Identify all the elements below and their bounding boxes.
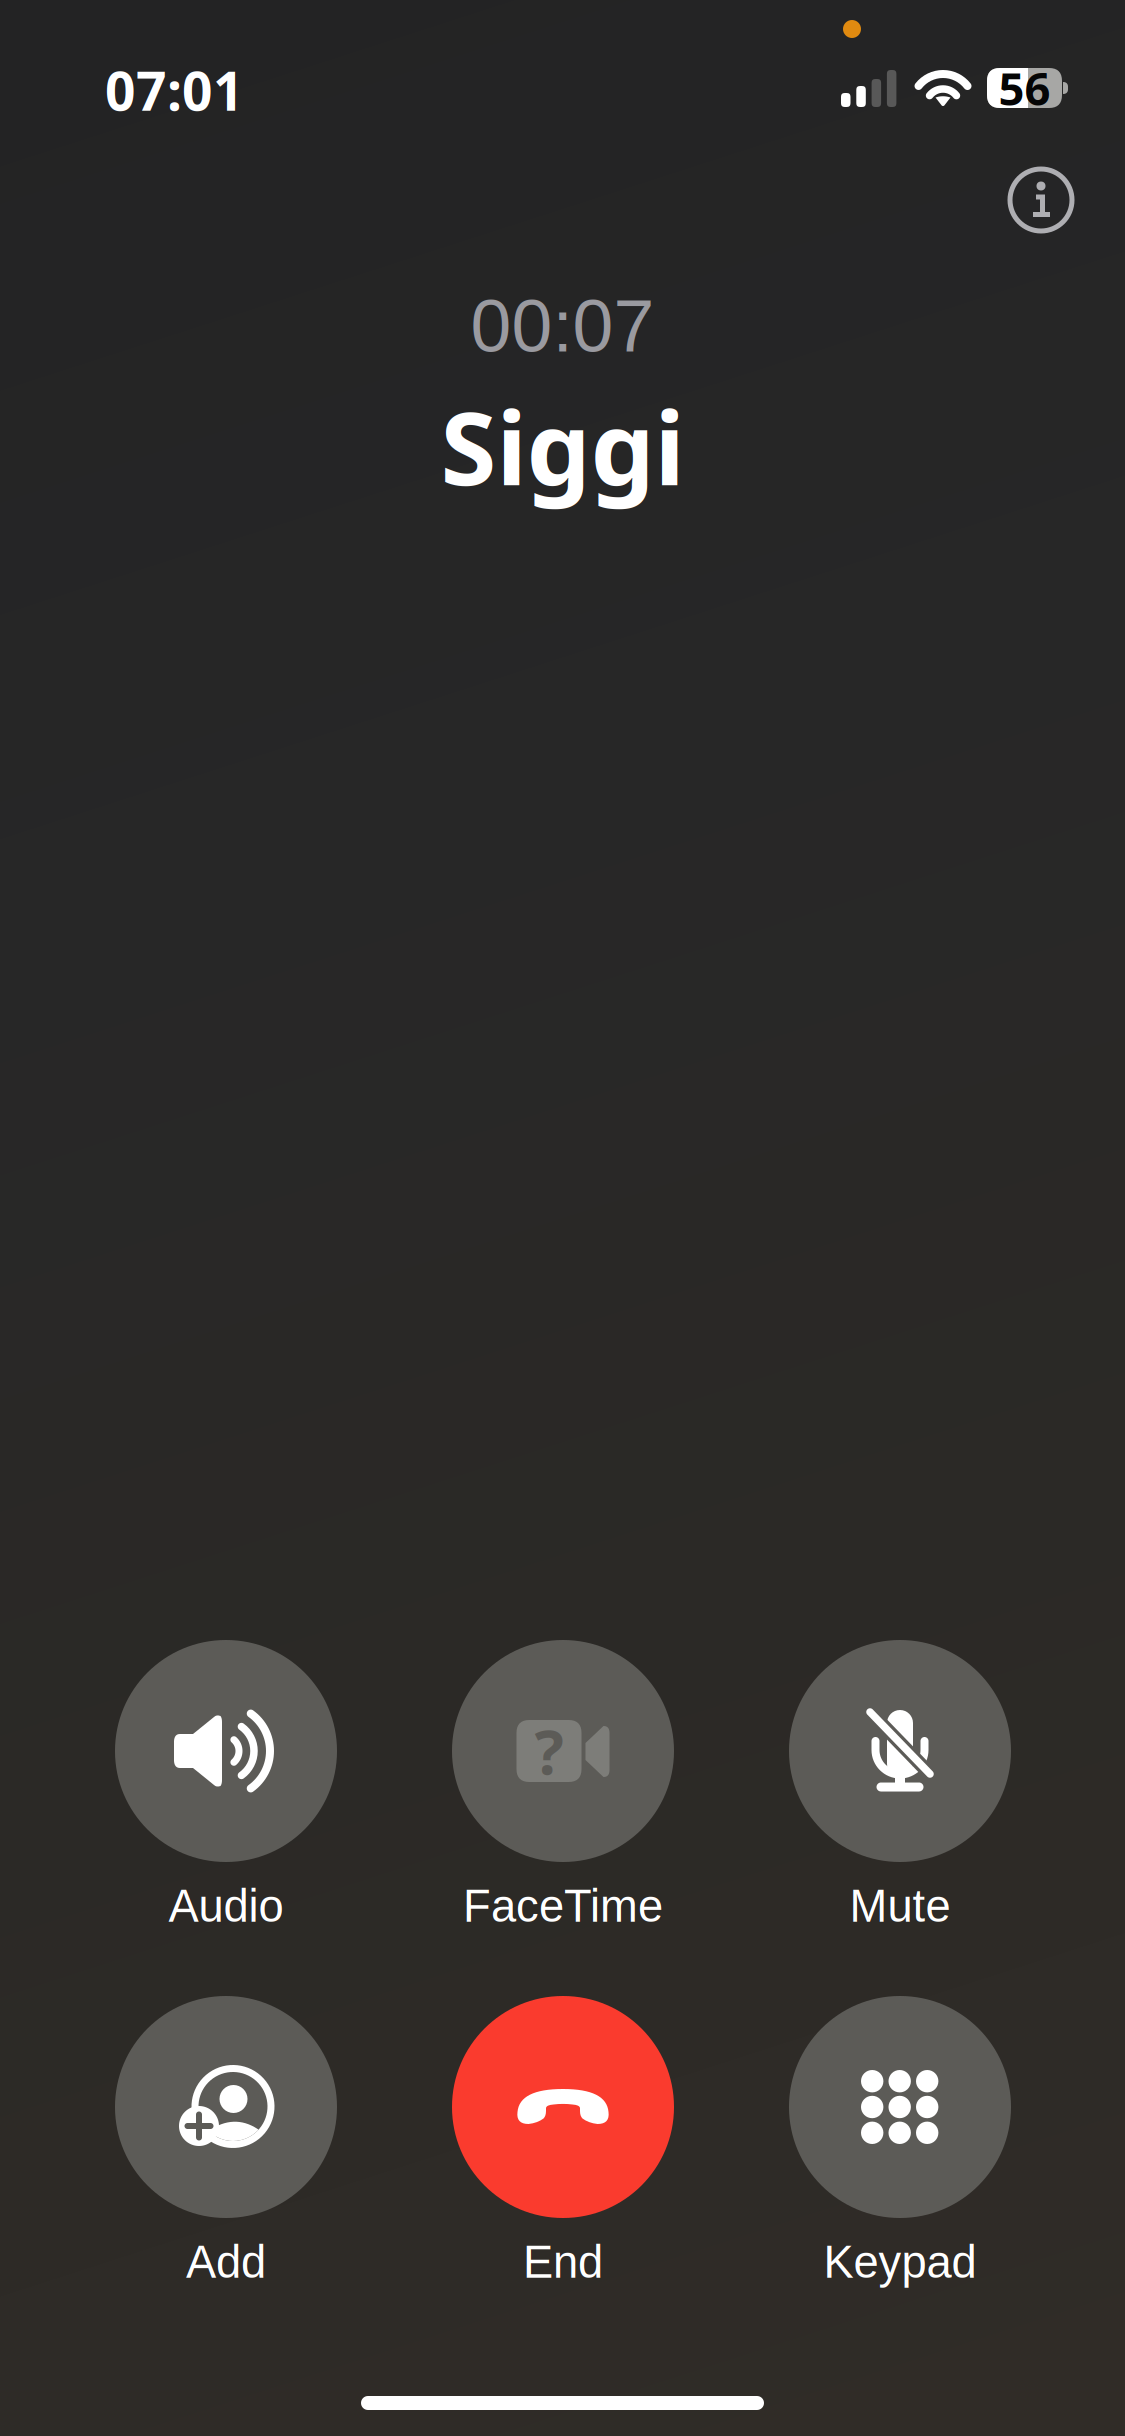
staticText: 07:01 xyxy=(105,54,244,126)
button[interactable]: Audio xyxy=(76,1640,376,1932)
button[interactable]: Keypad xyxy=(750,1996,1050,2288)
staticText: 00:07 xyxy=(470,285,654,367)
staticText: ? xyxy=(534,1709,563,1793)
staticText: End xyxy=(523,2237,603,2287)
staticText: Audio xyxy=(168,1881,283,1931)
button[interactable]: Call details xyxy=(991,150,1091,250)
staticText: Mute xyxy=(849,1881,950,1931)
staticText: 56 xyxy=(998,57,1050,119)
staticText: Siggi xyxy=(440,377,684,515)
button[interactable]: Add xyxy=(76,1996,376,2288)
button[interactable]: Mute xyxy=(750,1640,1050,1932)
button[interactable]: ? xyxy=(413,1640,713,1932)
staticText: FaceTime xyxy=(463,1881,663,1931)
staticText: Keypad xyxy=(823,2237,976,2287)
button[interactable]: End xyxy=(413,1996,713,2288)
staticText: Add xyxy=(186,2237,266,2287)
